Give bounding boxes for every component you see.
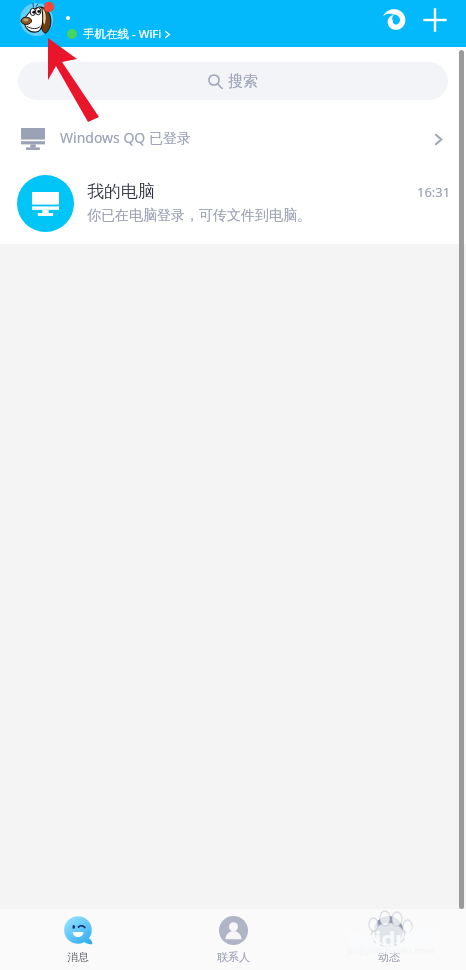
button[interactable]: Windows QQ 已登录 [0,114,466,164]
staticText: 我的电脑 [87,181,155,202]
staticText: jingyan.baidu.com [347,944,435,957]
button[interactable]: Night mode [379,5,411,37]
staticText: 16:31 [417,183,451,201]
staticText: 消息 [67,950,89,964]
button[interactable]: 消息 [0,909,156,970]
button[interactable]: 搜索 [18,62,448,100]
staticText: Baidu [347,923,410,953]
button[interactable]: Profile [20,3,53,36]
staticText: 搜索 [228,72,258,91]
staticText: 联系人 [217,950,250,964]
staticText: Windows QQ 已登录 [60,128,191,147]
button[interactable]: 我的电脑 [0,164,466,242]
button[interactable]: 手机在线 - WiFi [67,25,172,43]
staticText: 手机在线 - WiFi [83,26,162,42]
staticText: 动态 [378,950,400,964]
staticText: 你已在电脑登录，可传文件到电脑。 [87,207,311,225]
button[interactable]: Add [419,4,451,36]
button[interactable]: 联系人 [156,909,311,970]
button[interactable]: 动态 [311,909,466,970]
